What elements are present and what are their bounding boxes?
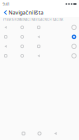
staticText: VYBERTE KOMBINACI NAVIGAČNÍCH TLAČÍTEK <box>2 18 63 21</box>
button[interactable] <box>0 51 79 61</box>
button[interactable]: Back <box>49 127 61 139</box>
button[interactable]: Back <box>2 8 8 17</box>
button[interactable] <box>0 23 79 32</box>
staticText: 9:41 <box>2 1 9 7</box>
button[interactable]: Home <box>33 127 45 139</box>
button[interactable] <box>0 42 79 51</box>
staticText: Navigační lišta <box>8 9 43 16</box>
button[interactable] <box>0 32 79 42</box>
button[interactable]: Recents <box>17 127 29 139</box>
